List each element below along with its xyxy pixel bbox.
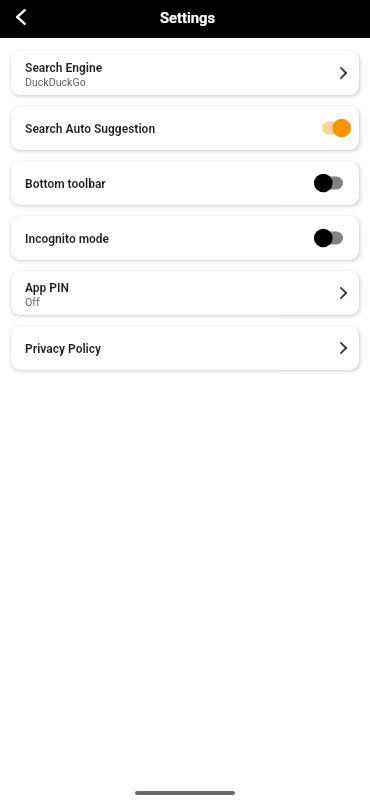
staticText: App PIN: [25, 281, 70, 295]
button[interactable]: Privacy Policy: [11, 326, 359, 370]
staticText: Incognito mode: [25, 232, 110, 246]
staticText: Settings: [160, 9, 216, 26]
button[interactable]: Incognito mode: [11, 216, 359, 260]
staticText: Search Auto Suggestion: [25, 122, 156, 136]
other: Open: [333, 63, 353, 83]
button[interactable]: App PIN: [11, 271, 359, 315]
other: Open: [333, 338, 353, 358]
staticText: Bottom toolbar: [25, 177, 106, 191]
button[interactable]: Toggle off: [313, 171, 343, 195]
button[interactable]: Toggle off: [313, 226, 343, 250]
button[interactable]: Back: [9, 5, 32, 28]
staticText: Privacy Policy: [25, 342, 102, 356]
staticText: Search Engine: [25, 61, 103, 75]
staticText: DuckDuckGo: [25, 76, 86, 88]
button[interactable]: Bottom toolbar: [11, 161, 359, 205]
other: Open: [333, 283, 353, 303]
button[interactable]: Search Engine: [11, 51, 359, 95]
button[interactable]: Search Auto Suggestion: [11, 106, 359, 150]
button[interactable]: Toggle on: [321, 116, 351, 140]
staticText: Off: [25, 296, 40, 308]
